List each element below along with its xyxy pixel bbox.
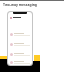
staticText: Two-way messaging (3, 2, 38, 7)
